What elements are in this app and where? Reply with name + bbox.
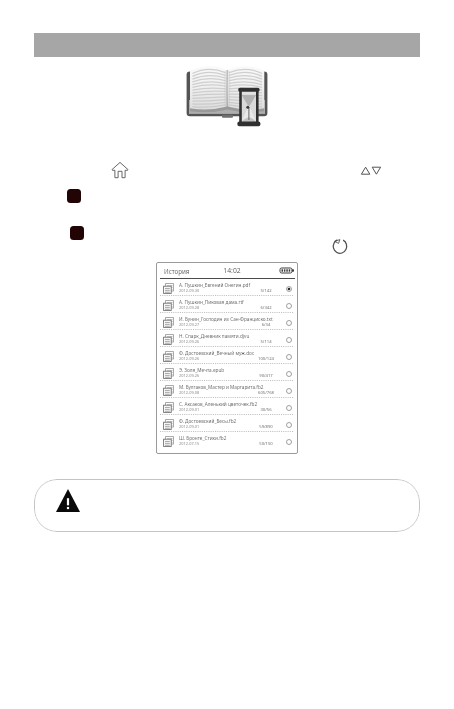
staticText: 2012-07-15 xyxy=(179,441,200,446)
button[interactable]: Ш. Бронте_Стихи.fb2 xyxy=(156,432,298,449)
staticText: 2012-09-26 xyxy=(179,356,200,361)
button[interactable]: А. Пушкин_Евгений Онегин.pdf xyxy=(156,279,298,296)
staticText: 59/890 xyxy=(251,424,281,430)
staticText: 605/768 xyxy=(251,390,281,396)
staticText: 5/142 xyxy=(251,288,281,294)
button[interactable]: Э. Золя_Мечта.epub xyxy=(156,364,298,381)
staticText: А. Пушкин_Пиковая дама.rtf xyxy=(179,299,244,305)
staticText: 2012-09-26 xyxy=(179,373,200,378)
staticText: Ф. Достоевский_Бесы.fb2 xyxy=(179,418,237,424)
staticText: 6/34 xyxy=(251,322,281,328)
staticText: И. Бунин_Господин из Сан-Франциско.txt xyxy=(179,316,273,322)
staticText: 2012-09-30 xyxy=(179,288,200,293)
staticText: 100/124 xyxy=(251,356,281,362)
button[interactable]: Menu key xyxy=(67,189,81,203)
button[interactable]: И. Бунин_Господин из Сан-Франциско.txt xyxy=(156,313,298,330)
staticText: 2012-09-01 xyxy=(179,424,200,429)
staticText: М. Булгаков_Мастер и Маргарита.fb2 xyxy=(179,384,264,390)
staticText: 2012-09-01 xyxy=(179,407,200,412)
staticText: 90/417 xyxy=(251,373,281,379)
staticText: Н. Спарк_Дневник памяти.djvu xyxy=(179,333,250,339)
button[interactable]: Ф. Достоевский_Вечный муж.doc xyxy=(156,347,298,364)
button[interactable]: Back key xyxy=(70,226,84,240)
staticText: 2012-09-28 xyxy=(179,305,200,310)
staticText: Ш. Бронте_Стихи.fb2 xyxy=(179,435,227,441)
staticText: 2012-09-27 xyxy=(179,322,200,327)
staticText: 6/342 xyxy=(251,305,281,311)
button[interactable]: С. Аксаков_Аленький цветочек.fb2 xyxy=(156,398,298,415)
button[interactable]: Refresh xyxy=(332,238,348,254)
staticText: С. Аксаков_Аленький цветочек.fb2 xyxy=(179,401,258,407)
button[interactable]: Home xyxy=(110,160,130,180)
button[interactable]: А. Пушкин_Пиковая дама.rtf xyxy=(156,296,298,313)
button[interactable]: Н. Спарк_Дневник памяти.djvu xyxy=(156,330,298,347)
staticText: А. Пушкин_Евгений Онегин.pdf xyxy=(179,282,251,288)
staticText: Ф. Достоевский_Вечный муж.doc xyxy=(179,350,255,356)
staticText: Э. Золя_Мечта.epub xyxy=(179,367,225,373)
staticText: История xyxy=(164,267,190,275)
staticText: 50/150 xyxy=(251,441,281,447)
staticText: 30/56 xyxy=(251,407,281,413)
staticText: 2012-09-08 xyxy=(179,390,200,395)
staticText: 2012-09-26 xyxy=(179,339,200,344)
button[interactable]: М. Булгаков_Мастер и Маргарита.fb2 xyxy=(156,381,298,398)
button[interactable]: Ф. Достоевский_Бесы.fb2 xyxy=(156,415,298,432)
staticText: 5/114 xyxy=(251,339,281,345)
staticText: 14:02 xyxy=(218,266,246,275)
button[interactable]: Page up and page down xyxy=(358,163,384,177)
